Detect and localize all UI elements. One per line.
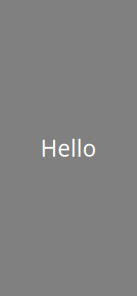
staticText: Hello [40,133,96,163]
